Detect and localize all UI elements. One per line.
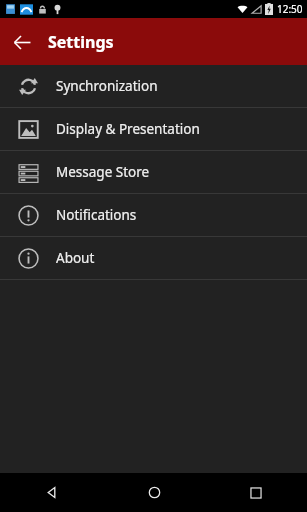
button[interactable]: Recent apps xyxy=(205,473,307,512)
staticText: Message Store xyxy=(56,163,150,181)
button[interactable]: Synchronization xyxy=(0,65,307,107)
button[interactable]: Message Store xyxy=(0,151,307,193)
button[interactable]: Home xyxy=(103,473,205,512)
button[interactable]: Back xyxy=(0,20,44,64)
staticText: About xyxy=(56,249,95,267)
staticText: Synchronization xyxy=(56,77,158,95)
staticText: Notifications xyxy=(56,206,137,224)
staticText: Display & Presentation xyxy=(56,120,200,138)
button[interactable]: Display & Presentation xyxy=(0,108,307,150)
button[interactable]: About xyxy=(0,237,307,279)
button[interactable]: Back xyxy=(0,473,103,512)
staticText: 12:50 xyxy=(277,2,303,16)
staticText: Settings xyxy=(48,31,114,53)
button[interactable]: Notifications xyxy=(0,194,307,236)
